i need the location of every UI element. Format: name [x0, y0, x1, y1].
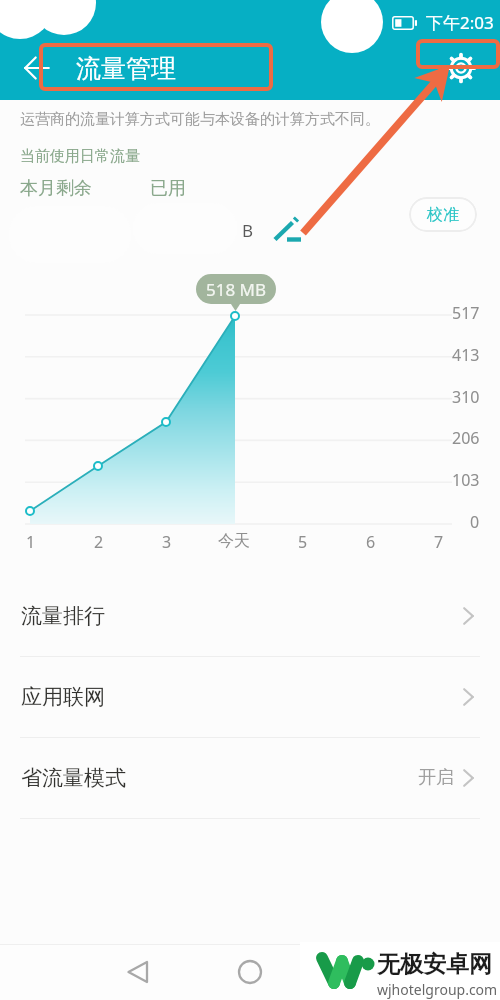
button[interactable]: 校准: [409, 197, 477, 232]
staticText: 无极安卓网: [377, 950, 492, 979]
staticText: 省流量模式: [21, 765, 126, 791]
staticText: 流量排行: [21, 603, 105, 629]
staticText: wjhotelgroup.com: [377, 980, 498, 999]
button[interactable]: 流量排行: [0, 575, 500, 656]
staticText: B: [242, 219, 254, 242]
staticText: 2: [94, 531, 104, 553]
staticText: 校准: [427, 205, 459, 225]
staticText: 0: [470, 511, 480, 533]
staticText: 运营商的流量计算方式可能与本设备的计算方式不同。: [20, 110, 380, 129]
staticText: 开启: [418, 766, 454, 789]
staticText: 1: [26, 531, 36, 553]
staticText: 下午2:03: [426, 11, 494, 34]
staticText: 6: [366, 531, 376, 553]
staticText: 518 MB: [206, 278, 267, 301]
staticText: 3: [162, 531, 172, 553]
staticText: 7: [434, 531, 444, 553]
staticText: 413: [452, 344, 480, 366]
staticText: 310: [452, 386, 480, 408]
staticText: 5: [298, 531, 308, 553]
staticText: 流量管理: [76, 53, 176, 84]
staticText: 已用: [150, 177, 186, 200]
staticText: 517: [452, 302, 480, 324]
staticText: 103: [452, 469, 480, 491]
staticText: 本月剩余: [20, 177, 92, 200]
staticText: 当前使用日常流量: [20, 147, 140, 166]
staticText: 206: [452, 427, 480, 449]
button[interactable]: Back: [15, 50, 59, 86]
button[interactable]: 省流量模式: [0, 737, 500, 818]
button[interactable]: Settings: [441, 48, 481, 88]
staticText: 应用联网: [21, 684, 105, 710]
button[interactable]: Edit: [271, 214, 303, 244]
button[interactable]: 应用联网: [0, 656, 500, 737]
staticText: 今天: [218, 531, 250, 551]
button[interactable]: Back: [118, 952, 158, 992]
button[interactable]: Home: [230, 952, 270, 992]
